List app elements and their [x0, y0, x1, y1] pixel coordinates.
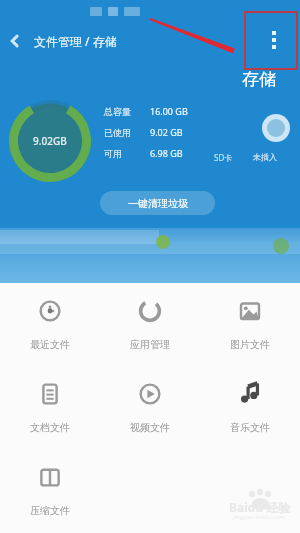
staticText: 应用管理: [130, 338, 170, 351]
staticText: 一键清理垃圾: [128, 197, 188, 210]
staticText: Baidu 经验: [229, 499, 291, 515]
staticText: 未插入: [253, 152, 277, 162]
staticText: jingyan.baidu.com: [233, 513, 285, 521]
staticText: 16.00 GB: [150, 105, 188, 117]
staticText: 音乐文件: [230, 421, 270, 434]
staticText: 存储: [242, 69, 276, 90]
button[interactable]: 图片文件: [200, 283, 300, 366]
button[interactable]: 视频文件: [100, 366, 200, 449]
staticText: 已使用: [104, 127, 144, 138]
button[interactable]: 压缩文件: [0, 449, 100, 532]
button[interactable]: Back: [0, 26, 30, 56]
staticText: 9.02 GB: [150, 126, 183, 138]
button[interactable]: 一键清理垃圾: [100, 191, 215, 215]
staticText: 文件管理 / 存储: [34, 33, 117, 49]
staticText: 压缩文件: [30, 504, 70, 517]
staticText: 图片文件: [230, 338, 270, 351]
button[interactable]: 文档文件: [0, 366, 100, 449]
staticText: 文档文件: [30, 421, 70, 434]
staticText: 可用: [104, 148, 144, 159]
staticText: SD卡: [214, 152, 233, 163]
button[interactable]: 音乐文件: [200, 366, 300, 449]
staticText: 9.02GB: [33, 134, 67, 148]
staticText: 最近文件: [30, 338, 70, 351]
staticText: 6.98 GB: [150, 147, 183, 159]
staticText: 总容量: [104, 106, 144, 117]
button[interactable]: More options: [272, 31, 276, 49]
staticText: 视频文件: [130, 421, 170, 434]
button[interactable]: 最近文件: [0, 283, 100, 366]
button[interactable]: 应用管理: [100, 283, 200, 366]
